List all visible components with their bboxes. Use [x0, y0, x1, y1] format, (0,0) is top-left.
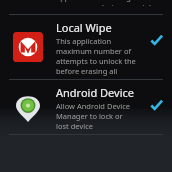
button[interactable]: Enabled — [140, 34, 172, 47]
staticText: Android Device Manage — [56, 85, 140, 100]
staticText: before erasing all phone data. — [56, 66, 140, 76]
button[interactable]: Local Wipe Policy — [0, 15, 172, 79]
staticText: attempts to unlock the device — [56, 56, 140, 66]
staticText: Allow Android Device — [56, 101, 131, 111]
staticText: lost device — [56, 121, 93, 131]
staticText: This application enforces a — [56, 36, 140, 46]
staticText: secure your device remotely. — [56, 2, 157, 6]
button[interactable]: Android Device Manage — [0, 80, 172, 134]
button[interactable]: application to manage and — [0, 0, 172, 14]
staticText: Manager to lock or erase a — [56, 111, 140, 121]
staticText: Local Wipe Policy — [56, 20, 140, 35]
staticText: maximum number of failed — [56, 46, 140, 56]
staticText: application to manage and — [56, 0, 151, 2]
button[interactable]: Enabled — [140, 99, 172, 112]
